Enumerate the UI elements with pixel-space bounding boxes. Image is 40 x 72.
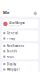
staticText: Apple Account xyxy=(9,25,19,27)
staticText: Me xyxy=(3,10,9,15)
button[interactable]: Focus xyxy=(2,54,38,59)
button[interactable]: Wallpaper xyxy=(2,67,38,72)
staticText: Notifications xyxy=(7,44,24,48)
button[interactable]: Privacy xyxy=(2,36,38,41)
button[interactable]: Sounds xyxy=(2,49,38,54)
staticText: Display xyxy=(7,62,16,66)
staticText: Alex Morgan xyxy=(9,21,25,25)
button[interactable]: Display xyxy=(2,61,38,67)
staticText: Privacy xyxy=(7,37,15,40)
staticText: Focus xyxy=(7,55,14,58)
staticText: General xyxy=(7,31,18,35)
button[interactable]: Notifications xyxy=(2,43,38,49)
button[interactable]: General xyxy=(2,30,38,36)
button[interactable]: Alex Morgan xyxy=(2,19,38,28)
staticText: Sounds xyxy=(7,49,17,53)
staticText: Wallpaper xyxy=(7,68,20,71)
button[interactable]: Account xyxy=(34,12,37,15)
